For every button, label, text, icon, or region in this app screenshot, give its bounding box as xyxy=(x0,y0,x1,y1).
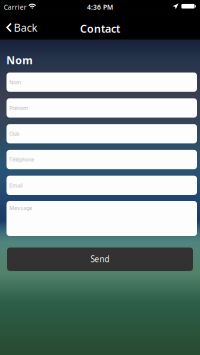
button[interactable]: Send xyxy=(7,247,193,271)
button[interactable]: Back xyxy=(0,12,46,39)
staticText: Message xyxy=(9,204,32,212)
staticText: 4:36 PM xyxy=(87,3,113,12)
staticText: Téléphone xyxy=(9,156,34,163)
button[interactable]: Nom xyxy=(6,72,197,92)
staticText: Club xyxy=(9,130,19,137)
staticText: Nom xyxy=(6,53,32,67)
staticText: Send xyxy=(90,254,109,264)
staticText: Email xyxy=(9,182,22,189)
button[interactable]: Téléphone xyxy=(6,150,197,169)
staticText: Contact xyxy=(80,22,120,36)
button[interactable]: Email xyxy=(6,176,197,195)
button[interactable]: Prénom xyxy=(6,98,197,118)
staticText: Carrier xyxy=(4,3,27,12)
staticText: Back xyxy=(14,20,38,35)
button[interactable]: Club xyxy=(6,124,197,143)
button[interactable]: Message xyxy=(6,201,197,236)
staticText: Nom xyxy=(9,79,21,86)
staticText: Prénom xyxy=(9,104,28,111)
